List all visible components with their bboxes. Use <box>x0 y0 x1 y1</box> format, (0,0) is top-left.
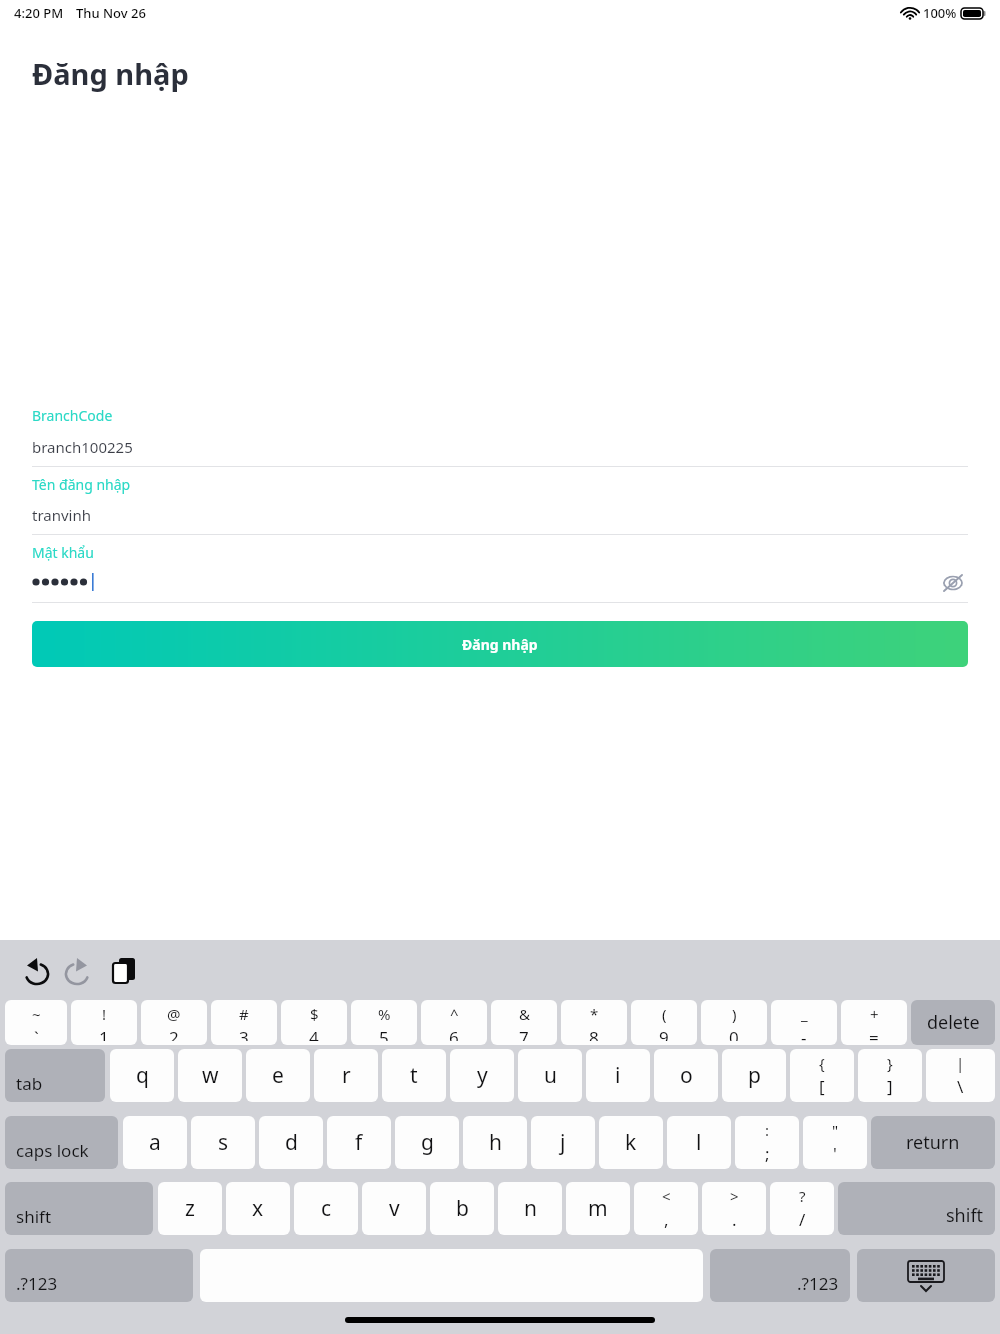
button[interactable]: r <box>314 1049 378 1102</box>
button[interactable]: q <box>110 1049 174 1102</box>
button[interactable]: delete <box>911 1000 995 1045</box>
button[interactable]: ! <box>71 1000 137 1045</box>
button[interactable]: a <box>123 1116 187 1169</box>
staticText: BranchCode <box>32 406 113 425</box>
staticText: ) <box>732 1004 737 1024</box>
other: Battery full <box>961 7 986 20</box>
button[interactable]: n <box>498 1182 562 1235</box>
button[interactable]: u <box>518 1049 582 1102</box>
button[interactable]: z <box>158 1182 222 1235</box>
staticText: 9 <box>659 1026 669 1041</box>
staticText: shift <box>946 1203 984 1228</box>
staticText: x <box>252 1194 264 1223</box>
button[interactable]: f <box>327 1116 391 1169</box>
staticText: tab <box>16 1072 43 1095</box>
staticText: - <box>801 1026 807 1041</box>
button[interactable]: shift <box>838 1182 995 1235</box>
staticText: 5 <box>379 1026 389 1041</box>
staticText: ` <box>34 1026 39 1041</box>
button[interactable]: _ <box>771 1000 837 1045</box>
staticText: | <box>956 1053 965 1073</box>
staticText: Tên đăng nhập <box>32 475 131 494</box>
staticText: @ <box>167 1004 181 1024</box>
button[interactable]: ? <box>770 1182 834 1235</box>
staticText: & <box>519 1004 530 1024</box>
button[interactable]: w <box>178 1049 242 1102</box>
button[interactable]: c <box>294 1182 358 1235</box>
button[interactable]: tab <box>5 1049 105 1102</box>
button[interactable]: ) <box>701 1000 767 1045</box>
button[interactable]: Paste <box>106 952 140 986</box>
staticText: 3 <box>239 1026 249 1041</box>
button[interactable]: x <box>226 1182 290 1235</box>
staticText: 7 <box>519 1026 529 1041</box>
button[interactable]: b <box>430 1182 494 1235</box>
button[interactable]: o <box>654 1049 718 1102</box>
staticText: g <box>421 1128 434 1157</box>
button[interactable]: < <box>634 1182 698 1235</box>
button[interactable]: m <box>566 1182 630 1235</box>
button[interactable]: $ <box>281 1000 347 1045</box>
button[interactable]: j <box>531 1116 595 1169</box>
button[interactable]: ^ <box>421 1000 487 1045</box>
button[interactable]: return <box>871 1116 995 1169</box>
button[interactable]: % <box>351 1000 417 1045</box>
button[interactable]: v <box>362 1182 426 1235</box>
other: Wi-Fi <box>902 7 918 20</box>
button[interactable]: { <box>790 1049 854 1102</box>
button[interactable]: # <box>211 1000 277 1045</box>
staticText: f <box>355 1128 363 1157</box>
staticText: : <box>765 1120 770 1140</box>
button[interactable]: * <box>561 1000 627 1045</box>
staticText: ~ <box>32 1004 41 1024</box>
button[interactable]: d <box>259 1116 323 1169</box>
button[interactable]: l <box>667 1116 731 1169</box>
button[interactable]: caps lock <box>5 1116 118 1169</box>
button[interactable]: i <box>586 1049 650 1102</box>
staticText: ; <box>765 1142 770 1165</box>
staticText: return <box>906 1130 960 1155</box>
button[interactable]: Hide keyboard <box>857 1249 995 1302</box>
staticText: h <box>489 1128 502 1157</box>
button[interactable]: } <box>858 1049 922 1102</box>
button[interactable]: g <box>395 1116 459 1169</box>
button[interactable]: " <box>803 1116 867 1169</box>
staticText: tranvinh <box>32 505 92 525</box>
button[interactable]: .?123 <box>710 1249 850 1302</box>
button[interactable]: | <box>926 1049 995 1102</box>
button[interactable]: : <box>735 1116 799 1169</box>
button[interactable]: ~ <box>5 1000 67 1045</box>
button[interactable]: .?123 <box>5 1249 193 1302</box>
staticText: branch100225 <box>32 437 133 457</box>
button[interactable]: Redo <box>62 952 96 986</box>
button[interactable]: & <box>491 1000 557 1045</box>
button[interactable]: t <box>382 1049 446 1102</box>
staticText: $ <box>310 1004 319 1024</box>
staticText: t <box>410 1061 418 1090</box>
staticText: 4 <box>309 1026 319 1041</box>
button[interactable]: y <box>450 1049 514 1102</box>
button[interactable]: p <box>722 1049 786 1102</box>
staticText: > <box>730 1186 739 1206</box>
staticText: + <box>870 1004 879 1024</box>
button[interactable]: h <box>463 1116 527 1169</box>
button[interactable]: s <box>191 1116 255 1169</box>
button[interactable]: Đăng nhập <box>32 621 968 667</box>
button[interactable]: + <box>841 1000 907 1045</box>
button[interactable]: > <box>702 1182 766 1235</box>
button[interactable]: Undo <box>18 952 52 986</box>
button[interactable]: @ <box>141 1000 207 1045</box>
button[interactable]: ( <box>631 1000 697 1045</box>
staticText: } <box>887 1053 893 1073</box>
staticText: _ <box>801 1004 808 1024</box>
staticText: caps lock <box>16 1139 89 1162</box>
staticText: 0 <box>729 1026 739 1041</box>
button[interactable]: e <box>246 1049 310 1102</box>
staticText: k <box>625 1128 637 1157</box>
button[interactable]: Show password <box>938 570 968 596</box>
button[interactable]: k <box>599 1116 663 1169</box>
staticText: n <box>524 1194 537 1223</box>
staticText: 100% <box>923 4 957 22</box>
button[interactable]: shift <box>5 1182 153 1235</box>
